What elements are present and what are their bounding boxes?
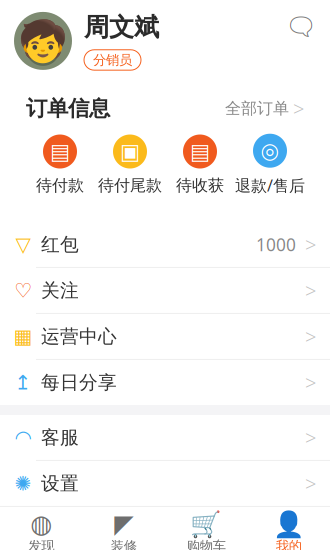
button[interactable]: ↥ (0, 360, 330, 405)
staticText: 运营中心 (41, 325, 117, 348)
staticText: ◍ (30, 510, 52, 538)
staticText: 🗨 (285, 12, 317, 41)
staticText: 分销员 (93, 52, 132, 68)
button[interactable]: 全部订单 (225, 95, 304, 122)
staticText: ◠ (14, 426, 31, 449)
staticText: 待付款 (36, 175, 84, 195)
staticText: > (305, 470, 316, 497)
staticText: 周文斌 (84, 12, 159, 43)
staticText: 我的 (276, 538, 302, 550)
staticText: > (305, 369, 316, 396)
button[interactable]: Messages (286, 12, 316, 70)
button[interactable]: ▦ (0, 314, 330, 359)
staticText: > (305, 231, 316, 258)
staticText: ▤ (50, 139, 70, 164)
staticText: ▦ (13, 325, 32, 348)
button[interactable]: ◤ (82, 507, 165, 550)
staticText: 装修 (111, 538, 137, 550)
staticText: ✺ (14, 472, 31, 495)
staticText: 每日分享 (41, 371, 117, 394)
staticText: ↥ (14, 371, 31, 394)
button[interactable]: 分销员 (84, 50, 141, 70)
button[interactable]: ▤ (25, 132, 95, 197)
staticText: 退款/售后 (235, 175, 305, 196)
staticText: 订单信息 (26, 95, 110, 121)
staticText: > (305, 277, 316, 304)
staticText: 发现 (28, 538, 54, 550)
button[interactable]: ◠ (0, 415, 330, 460)
staticText: 👤 (273, 509, 305, 538)
staticText: ▣ (120, 139, 140, 164)
staticText: 客服 (41, 426, 79, 449)
staticText: 🛒 (190, 509, 222, 538)
staticText: 待付尾款 (98, 175, 162, 195)
staticText: 全部订单 (225, 99, 289, 118)
staticText: > (293, 95, 304, 122)
staticText: 🧒 (18, 18, 68, 64)
staticText: > (305, 424, 316, 451)
staticText: ▤ (190, 139, 210, 164)
button[interactable]: ◎ (235, 132, 305, 198)
staticText: 1000 (256, 233, 296, 256)
button[interactable]: ▣ (95, 132, 165, 197)
staticText: ◎ (260, 139, 279, 163)
button[interactable]: ▽ (0, 222, 330, 267)
staticText: 待收获 (176, 175, 224, 195)
button[interactable]: ▤ (165, 132, 235, 197)
button[interactable]: 👤 (247, 507, 330, 550)
button[interactable]: ◍ (0, 507, 82, 550)
staticText: ▽ (15, 233, 30, 256)
button[interactable]: ♡ (0, 268, 330, 313)
button[interactable]: Profile photo (14, 12, 72, 70)
button[interactable]: 🛒 (165, 507, 247, 550)
staticText: 购物车 (187, 538, 226, 550)
staticText: ◤ (114, 510, 133, 538)
staticText: ♡ (14, 279, 32, 302)
staticText: > (305, 323, 316, 350)
button[interactable]: ✺ (0, 461, 330, 506)
staticText: 红包 (41, 233, 79, 256)
staticText: 关注 (41, 279, 79, 302)
staticText: 设置 (41, 472, 79, 495)
